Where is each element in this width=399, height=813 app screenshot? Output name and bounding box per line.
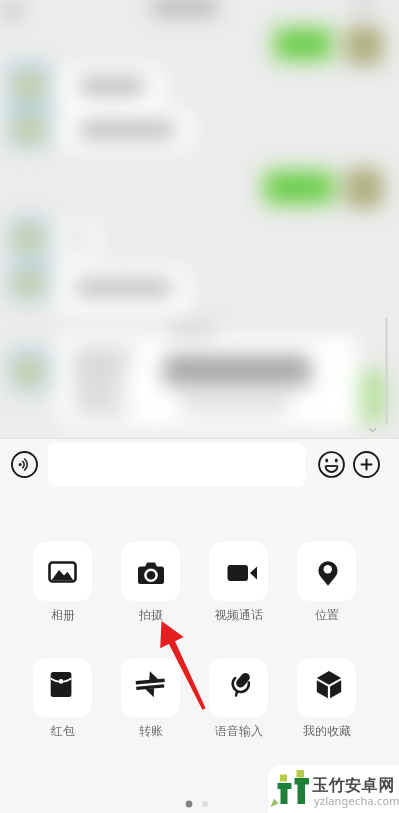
button[interactable] xyxy=(209,542,268,601)
staticText: 相册 xyxy=(51,607,75,622)
staticText: 我的收藏 xyxy=(303,723,351,738)
button[interactable] xyxy=(11,451,38,478)
staticText: 玉竹安卓网 xyxy=(312,776,395,796)
button[interactable] xyxy=(209,658,268,717)
button[interactable] xyxy=(297,658,356,717)
button[interactable] xyxy=(121,658,180,717)
button[interactable] xyxy=(33,542,92,601)
button[interactable] xyxy=(318,451,345,478)
staticText: 红包 xyxy=(51,723,75,738)
button[interactable] xyxy=(297,542,356,601)
staticText: yzlangecha.com xyxy=(314,793,399,808)
staticText: 语音输入 xyxy=(215,723,263,738)
staticText: 视频通话 xyxy=(215,607,263,622)
button[interactable] xyxy=(33,658,92,717)
button[interactable] xyxy=(353,451,380,478)
staticText: 位置 xyxy=(315,607,339,622)
staticText: 拍摄 xyxy=(139,607,163,622)
staticText: 转账 xyxy=(139,723,163,738)
button[interactable] xyxy=(121,542,180,601)
